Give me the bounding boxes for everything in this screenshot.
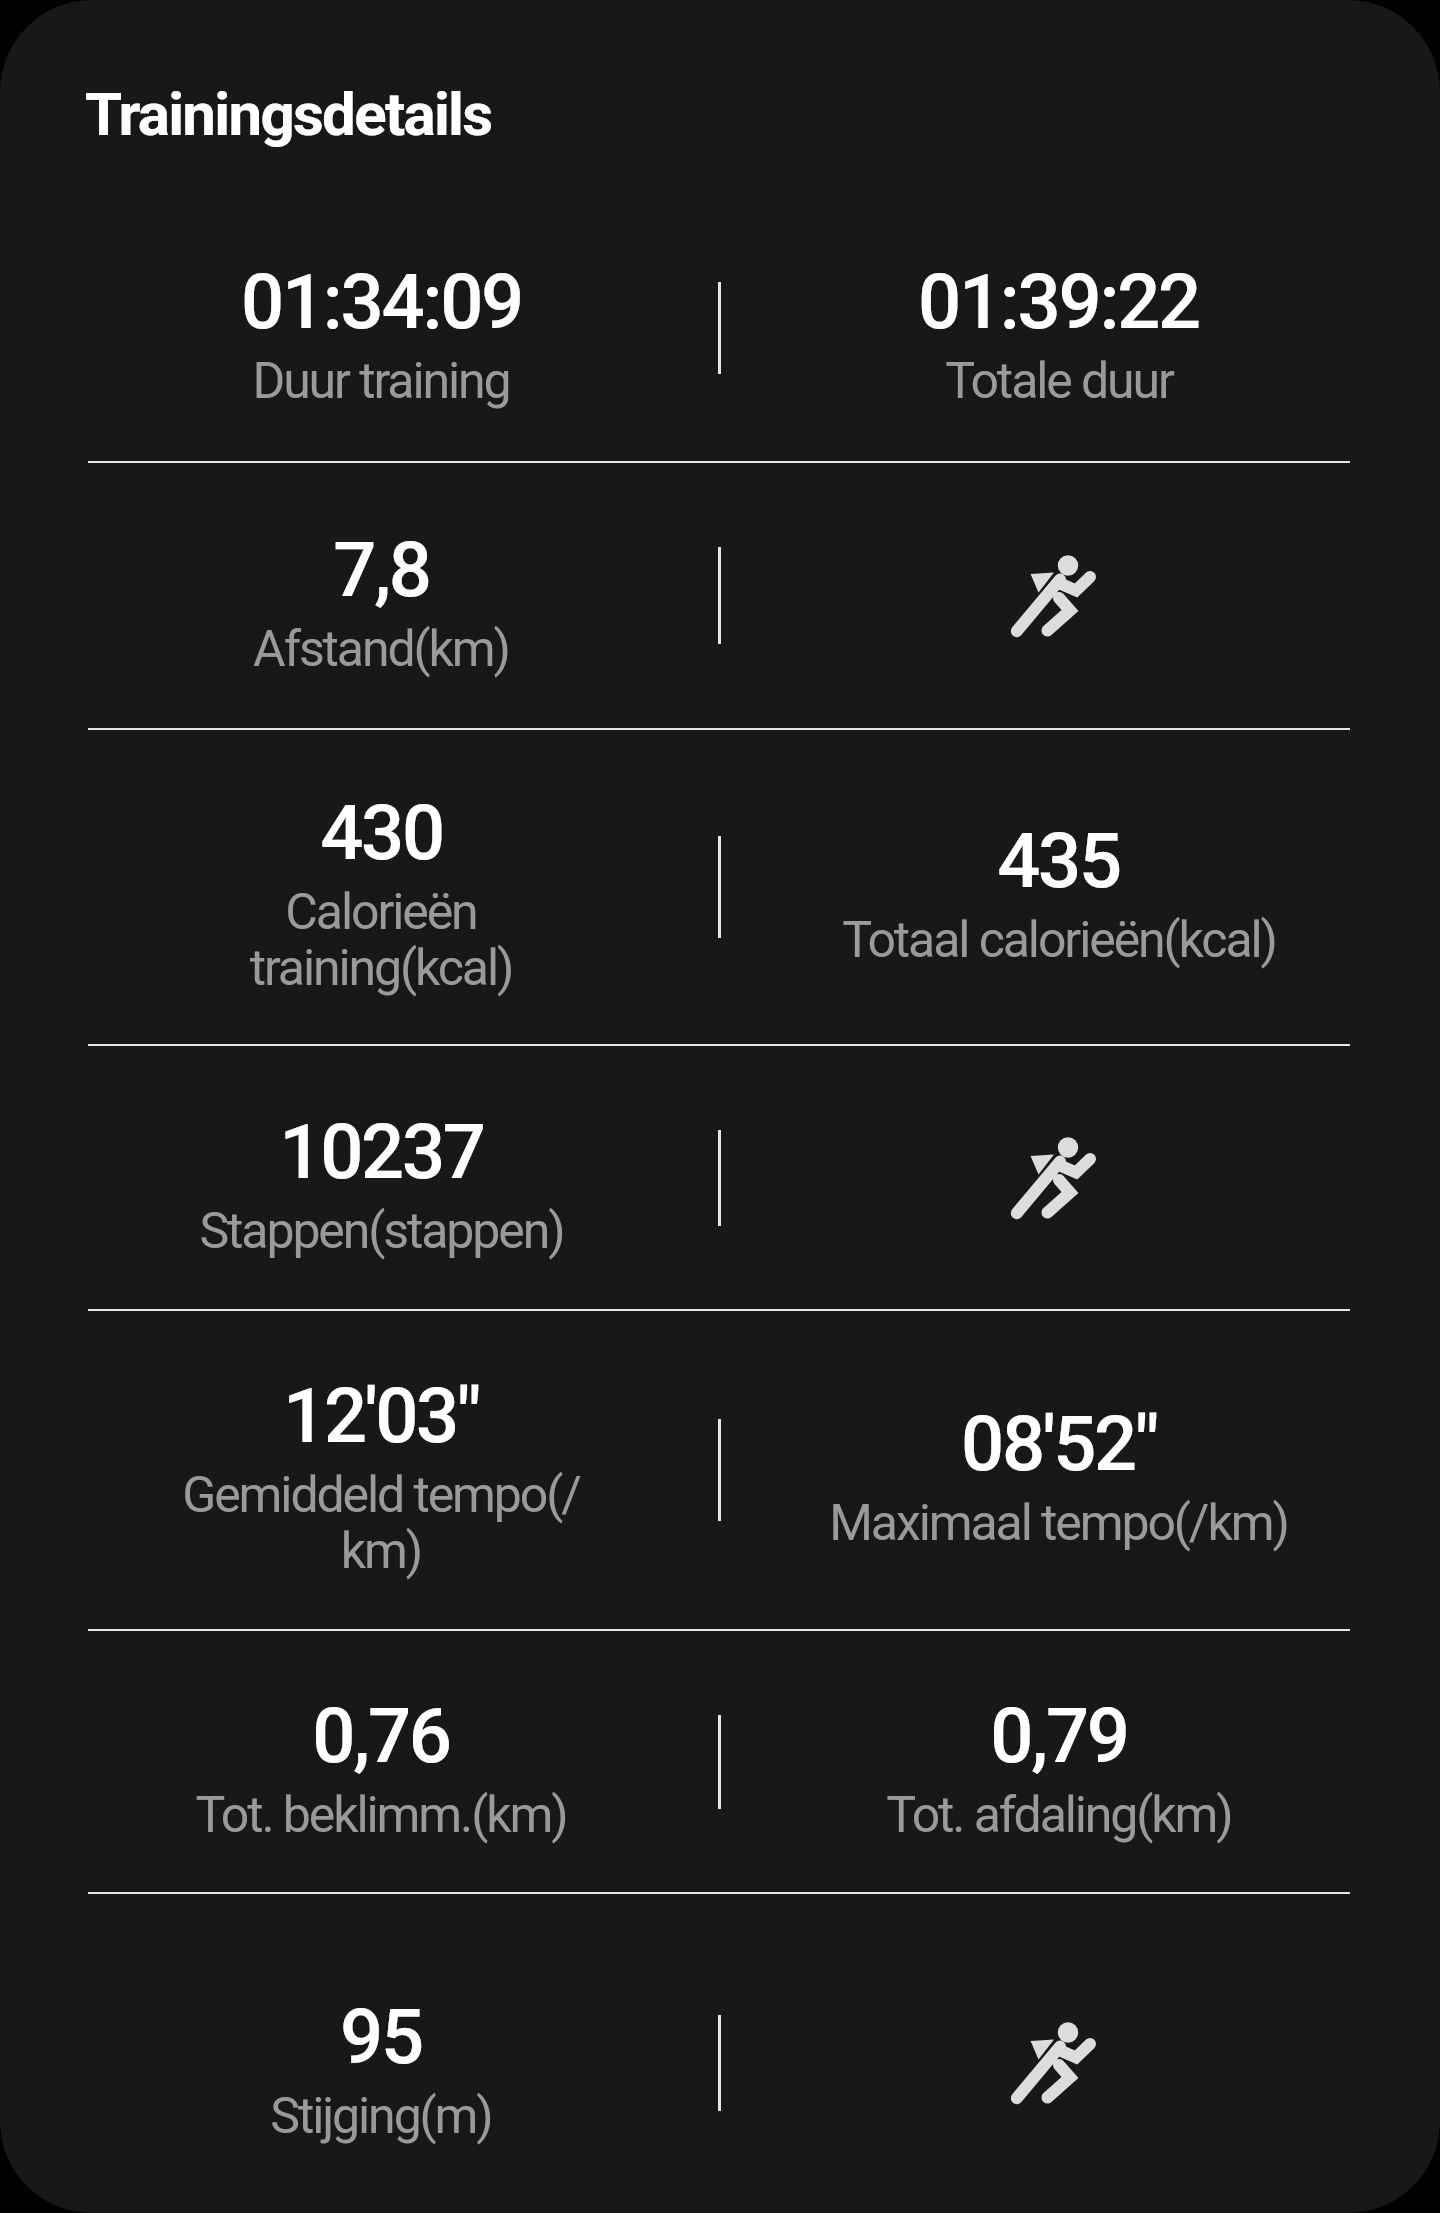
button[interactable]: 08'52" [721, 1311, 1396, 1629]
button[interactable]: 430 [44, 730, 718, 1044]
button[interactable]: Running workout type [721, 1912, 1396, 2213]
staticText: 430 [320, 792, 443, 876]
staticText: Tot. afdaling(km) [886, 1788, 1232, 1844]
staticText: Trainingsdetails [85, 79, 492, 149]
staticText: Gemiddeld tempo(/km) [151, 1468, 611, 1580]
staticText: 0,79 [990, 1695, 1128, 1779]
staticText: Stijging(m) [270, 2089, 492, 2145]
staticText: Calorieën training(kcal) [151, 885, 611, 997]
staticText: Duur training [252, 354, 510, 410]
button[interactable]: 0,76 [44, 1631, 718, 1892]
staticText: Totaal calorieën(kcal) [842, 913, 1276, 969]
button[interactable]: 01:39:22 [721, 195, 1396, 461]
button[interactable]: 10237 [44, 1046, 718, 1309]
staticText: 08'52" [961, 1403, 1157, 1487]
staticText: Maximaal tempo(/km) [829, 1496, 1288, 1552]
button[interactable]: 435 [721, 730, 1396, 1044]
button[interactable]: 0,79 [721, 1631, 1396, 1892]
staticText: 435 [997, 820, 1120, 904]
staticText: 12'03" [283, 1375, 479, 1459]
staticText: 7,8 [333, 529, 430, 613]
button[interactable]: 95 [44, 1912, 718, 2213]
staticText: 01:34:09 [241, 261, 522, 345]
staticText: Afstand(km) [253, 622, 509, 678]
button[interactable]: 7,8 [44, 463, 718, 728]
staticText: 10237 [279, 1111, 484, 1195]
button[interactable]: Running workout type [721, 1046, 1396, 1309]
button[interactable]: 01:34:09 [44, 195, 718, 461]
staticText: 95 [340, 1996, 422, 2080]
staticText: 0,76 [312, 1695, 450, 1779]
staticText: Stappen(stappen) [199, 1204, 564, 1260]
staticText: 01:39:22 [918, 261, 1199, 345]
button[interactable]: Running workout type [721, 463, 1396, 728]
staticText: Totale duur [945, 354, 1173, 410]
staticText: Tot. beklimm.(km) [195, 1788, 567, 1844]
button[interactable]: 12'03" [44, 1311, 718, 1629]
